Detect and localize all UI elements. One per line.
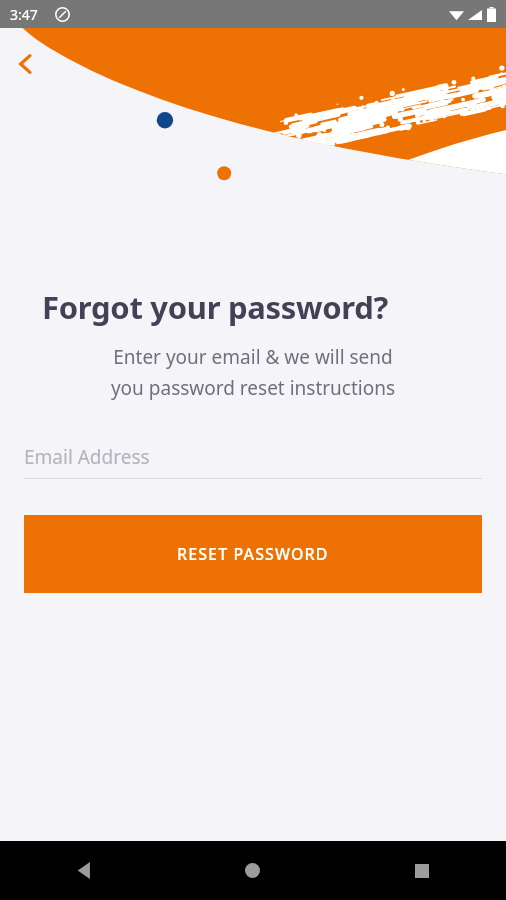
button[interactable]: RESET PASSWORD — [24, 515, 482, 593]
staticText: Email Address — [24, 444, 150, 470]
staticText: 3:47 — [10, 5, 38, 24]
button[interactable]: Email Address — [24, 436, 482, 478]
button[interactable]: Back — [0, 841, 168, 900]
button[interactable]: Back — [4, 42, 48, 86]
button[interactable]: Home — [168, 841, 337, 900]
button[interactable]: Recent apps — [337, 841, 506, 900]
staticText: Enter your email & we will send you pass… — [24, 344, 482, 401]
staticText: RESET PASSWORD — [177, 543, 329, 565]
staticText: Forgot your password? — [42, 286, 389, 328]
